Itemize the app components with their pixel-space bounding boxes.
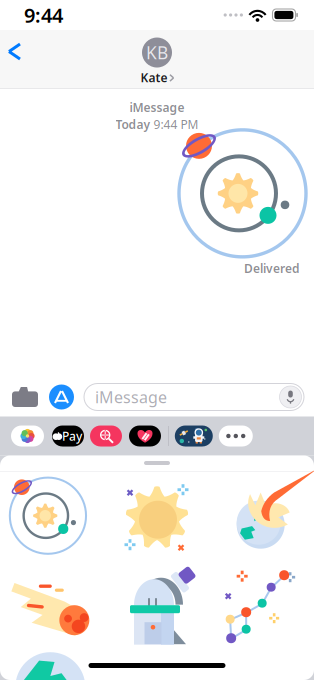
- button[interactable]: Photos: [11, 425, 44, 446]
- button[interactable]: Meteor sticker: [0, 564, 105, 653]
- button[interactable]: Apple Pay: [52, 425, 84, 446]
- button[interactable]: Constellation sticker: [209, 564, 314, 653]
- staticText: Today: [115, 116, 150, 132]
- staticText: Delivered: [244, 260, 300, 276]
- button[interactable]: More apps: [219, 425, 253, 446]
- button[interactable]: Planet sticker: [209, 653, 314, 680]
- staticText: Pay: [62, 428, 82, 444]
- staticText: Kate: [140, 69, 167, 85]
- button[interactable]: App Store: [44, 380, 79, 413]
- staticText: 9:44 PM: [153, 116, 198, 132]
- button[interactable]: Observatory sticker: [105, 564, 209, 653]
- staticText: KB: [146, 41, 168, 64]
- button[interactable]: Solar system sticker: [0, 472, 105, 564]
- button[interactable]: Images: [90, 425, 122, 446]
- staticText: iMessage: [129, 99, 184, 115]
- button[interactable]: Sun sticker: [105, 472, 209, 564]
- button[interactable]: Rocket sticker: [105, 653, 209, 680]
- button[interactable]: Music: [129, 425, 161, 446]
- button[interactable]: Camera: [6, 381, 44, 413]
- button[interactable]: Comet sticker: [209, 472, 314, 564]
- button[interactable]: Back: [0, 34, 36, 69]
- button[interactable]: Moon sticker: [0, 653, 105, 680]
- staticText: 9:44: [24, 2, 63, 28]
- staticText: iMessage: [95, 386, 167, 408]
- button[interactable]: Space Stickers: [175, 425, 213, 446]
